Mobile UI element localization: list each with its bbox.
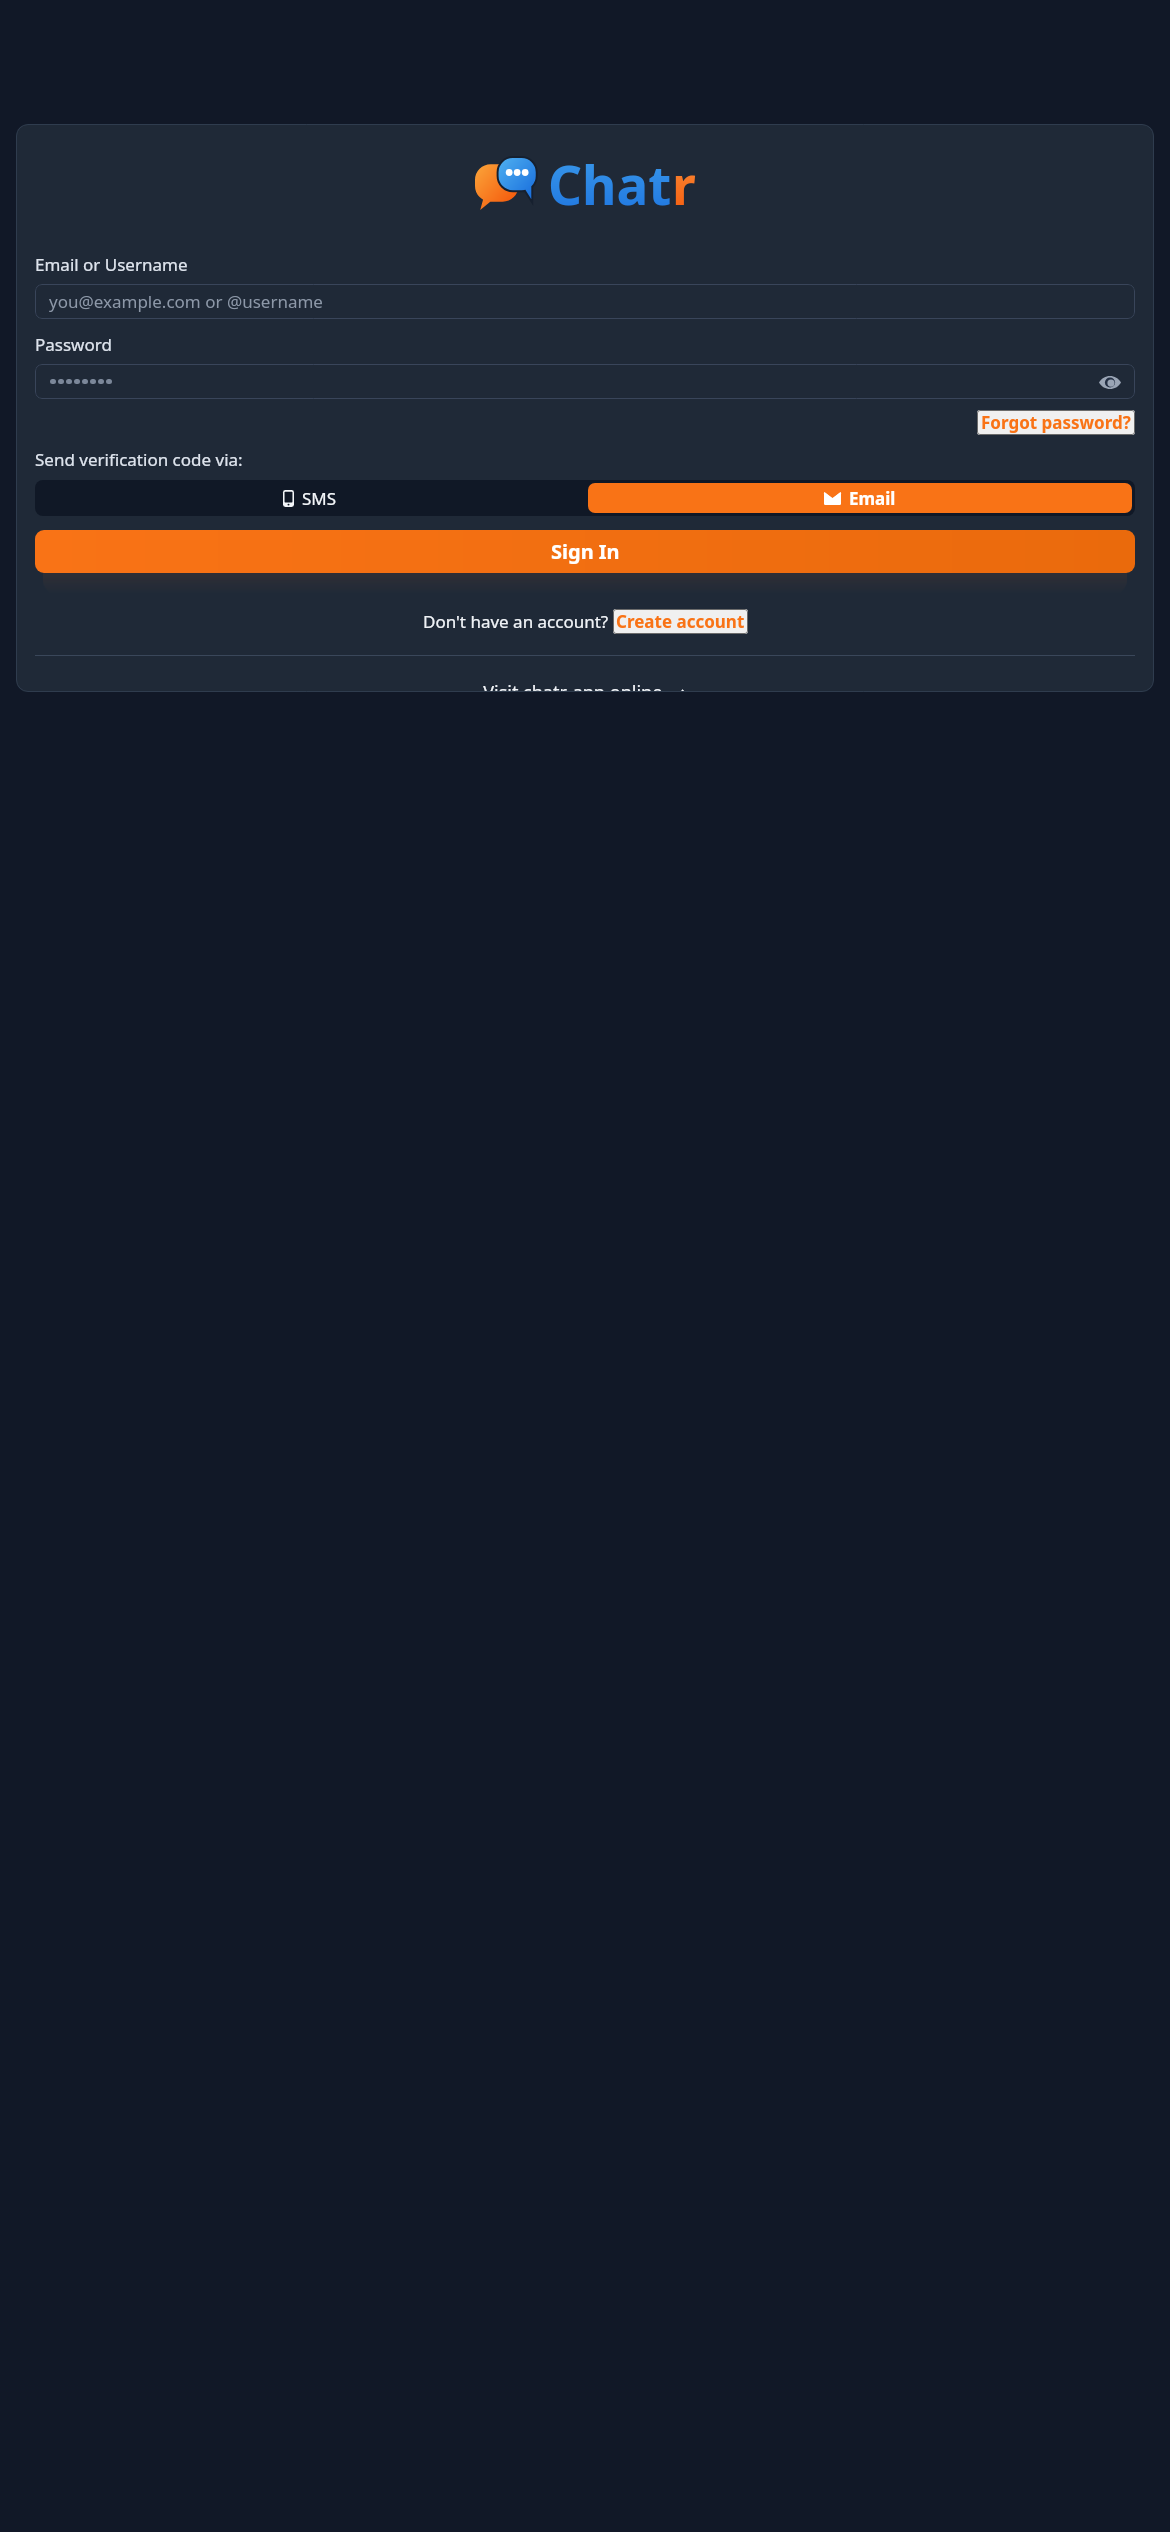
staticText: Sign In — [551, 538, 620, 565]
button[interactable]: Show password — [35, 364, 1135, 399]
button[interactable]: Forgot password? — [977, 410, 1135, 435]
staticText: Chat — [548, 148, 672, 220]
button[interactable]: Show password — [1095, 367, 1125, 397]
button[interactable]: SMS — [35, 480, 585, 516]
staticText: Visit chatr-app.online → — [483, 680, 687, 692]
staticText: Forgot password? — [981, 411, 1131, 434]
button[interactable]: Create account — [613, 609, 748, 634]
staticText: Send verification code via: — [35, 448, 243, 471]
button[interactable]: Sign In — [35, 530, 1135, 573]
staticText: SMS — [302, 487, 337, 510]
staticText: you@example.com or @username — [49, 290, 323, 313]
staticText: Password — [35, 333, 112, 356]
staticText: Email or Username — [35, 253, 188, 276]
staticText: Create account — [616, 610, 745, 633]
staticText: Don't have an account? — [423, 610, 613, 633]
staticText: r — [672, 148, 696, 220]
button[interactable]: Email — [588, 483, 1132, 513]
staticText: Email — [849, 487, 896, 510]
button[interactable]: you@example.com or @username — [35, 284, 1135, 319]
button[interactable]: Visit chatr-app.online → — [35, 680, 1135, 692]
